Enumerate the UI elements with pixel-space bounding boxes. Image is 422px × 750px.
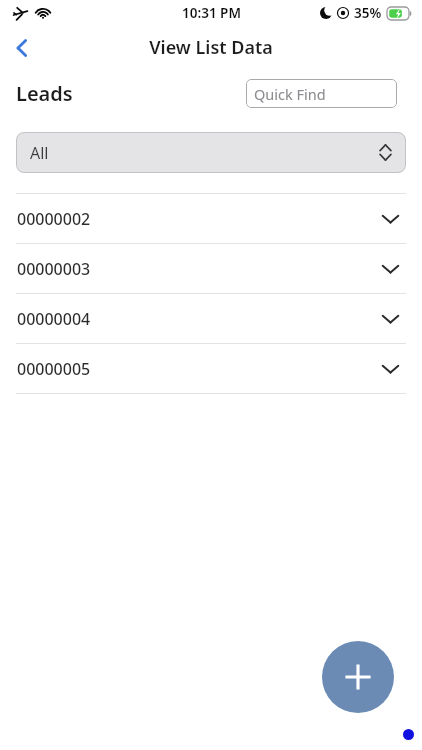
button[interactable]: Back bbox=[0, 26, 44, 69]
staticText: 00000002 bbox=[17, 208, 91, 230]
button[interactable]: Add bbox=[322, 641, 394, 713]
staticText: 00000005 bbox=[17, 358, 91, 380]
staticText: Leads bbox=[16, 80, 73, 107]
button[interactable]: 00000002 bbox=[0, 194, 422, 243]
button[interactable]: 00000004 bbox=[0, 294, 422, 343]
staticText: 00000004 bbox=[17, 308, 91, 330]
button[interactable]: 00000003 bbox=[0, 244, 422, 293]
staticText: 35% bbox=[354, 4, 382, 22]
button[interactable]: All bbox=[16, 132, 406, 173]
staticText: All bbox=[30, 142, 49, 164]
staticText: 10:31 PM bbox=[182, 4, 241, 22]
button[interactable]: 00000005 bbox=[0, 344, 422, 393]
staticText: 00000003 bbox=[17, 258, 91, 280]
staticText: View List Data bbox=[149, 35, 273, 60]
staticText: Quick Find bbox=[254, 84, 326, 104]
button[interactable]: Quick Find bbox=[246, 79, 397, 108]
